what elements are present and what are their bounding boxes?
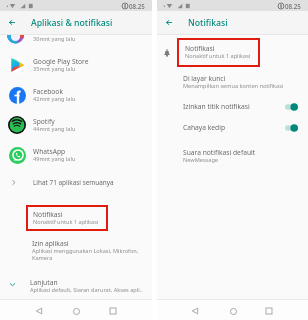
staticText: Aplikasi default, Siaran darurat, Akses … xyxy=(30,286,143,294)
button[interactable]: Back xyxy=(0,11,23,34)
staticText: Lanjutan xyxy=(30,278,58,287)
staticText: 08.25 xyxy=(129,2,145,10)
staticText: 44mnt yang lalu xyxy=(33,125,76,133)
button[interactable]: Back xyxy=(157,11,180,34)
staticText: Lihat 71 aplikasi semuanya xyxy=(33,178,114,187)
staticText: Notifikasi xyxy=(188,17,228,29)
button[interactable]: Izinkan titik notifikasi xyxy=(157,102,308,111)
staticText: Izinkan titik notifikasi xyxy=(183,102,285,111)
button[interactable]: Google Play Store xyxy=(0,50,152,80)
staticText: Notifikasi xyxy=(33,210,63,219)
staticText: Suara notifikasi default xyxy=(183,148,256,157)
button[interactable]: Home xyxy=(225,303,241,319)
staticText: Spotify xyxy=(33,117,55,126)
staticText: Aplikasi menggunakan Lokasi, Mikrofon, xyxy=(32,247,139,255)
button[interactable]: 30mnt yang lalu xyxy=(0,35,152,44)
button[interactable]: Lihat 71 aplikasi semuanya xyxy=(0,175,152,190)
button[interactable]: Notifikasi xyxy=(177,38,260,67)
staticText: WhatsApp xyxy=(33,147,66,156)
staticText: Di layar kunci xyxy=(183,74,226,83)
staticText: 42mnt yang lalu xyxy=(33,95,76,103)
button[interactable]: WhatsApp xyxy=(0,140,152,170)
staticText: Facebook xyxy=(33,87,63,96)
button[interactable]: Spotify xyxy=(0,110,152,140)
button[interactable]: Lanjutan xyxy=(0,278,152,295)
staticText: Nonaktif untuk 1 aplikasi xyxy=(33,218,99,226)
button[interactable]: Facebook xyxy=(0,80,152,110)
staticText: Izin aplikasi xyxy=(32,239,69,248)
staticText: Notifikasi xyxy=(185,44,215,53)
staticText: Menampilkan semua konten notifikasi xyxy=(183,82,284,90)
staticText: 08.25 xyxy=(285,2,301,10)
staticText: Aplikasi & notifikasi xyxy=(31,17,113,29)
button[interactable]: Suara notifikasi default xyxy=(157,148,308,165)
staticText: Google Play Store xyxy=(33,57,89,66)
staticText: 35mnt yang lalu xyxy=(33,65,76,73)
button[interactable]: Izin aplikasi xyxy=(0,239,152,264)
staticText: NewMessage xyxy=(183,156,219,164)
button[interactable]: Home xyxy=(68,303,84,319)
button[interactable]: Back xyxy=(187,303,203,319)
button[interactable]: Recent apps xyxy=(105,303,121,319)
button[interactable]: Di layar kunci xyxy=(157,74,308,91)
staticText: 30mnt yang lalu xyxy=(33,35,76,43)
staticText: Cahaya kedip xyxy=(183,123,285,132)
staticText: 49mnt yang lalu xyxy=(33,155,76,163)
button[interactable]: Recent apps xyxy=(261,303,277,319)
button[interactable]: Cahaya kedip xyxy=(157,123,308,132)
staticText: Kamera xyxy=(32,254,53,262)
button[interactable]: Notifikasi xyxy=(26,205,108,231)
staticText: Nonaktif untuk 1 aplikasi xyxy=(185,52,251,60)
button[interactable]: Back xyxy=(31,303,47,319)
